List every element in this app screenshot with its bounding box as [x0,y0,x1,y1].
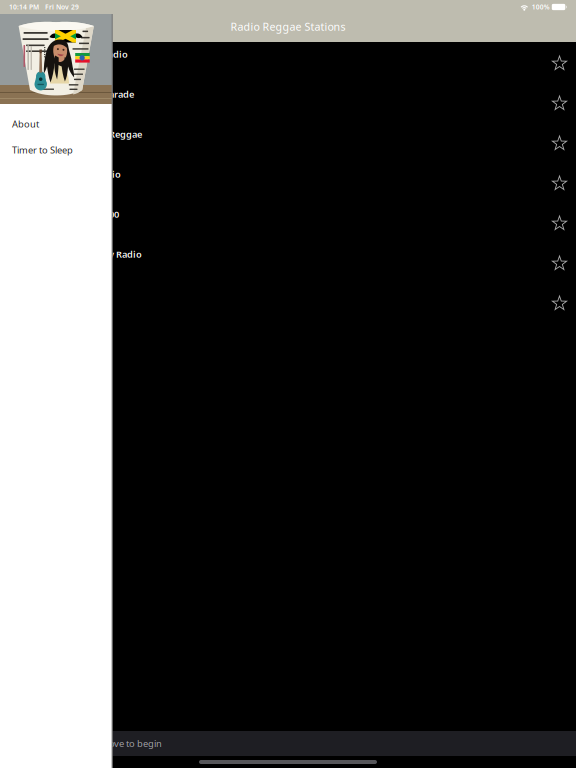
button[interactable]: Real Roots Radio [0,42,576,82]
button[interactable]: Kingston City Radio [0,242,576,282]
button[interactable]: Add Roots Radio Reggae to favourites [545,130,574,157]
button[interactable]: Add Hot 102 FM 100 to favourites [545,210,574,237]
button[interactable]: Add Kingston City Radio to favourites [545,250,574,277]
staticText: 100% [532,3,550,11]
button[interactable]: Add Real Roots Radio to favourites [545,50,574,77]
staticText: One Love Radio [52,168,121,180]
staticText: Kingston City Radio [52,248,142,260]
staticText: Reggae Hit Parade [52,88,134,100]
staticText: 10:14 PM [9,3,39,11]
button[interactable]: Irie FM [0,282,576,322]
staticText: Hot 102 FM 100 [52,208,119,220]
button[interactable]: Roots Radio Reggae [0,122,576,162]
button[interactable]: Reggae Hit Parade [0,82,576,122]
staticText: Real Roots Radio [52,48,128,60]
staticText: Radio Reggae Stations [230,19,345,34]
staticText: Timer to Sleep [12,144,73,156]
button[interactable]: Hot 102 FM 100 [0,202,576,242]
button[interactable]: Add Reggae Hit Parade to favourites [545,90,574,117]
staticText: About [12,118,39,130]
button[interactable]: Timer to Sleep [0,137,112,163]
staticText: Select a station above to begin [34,737,162,750]
button[interactable]: About [0,111,112,137]
button[interactable]: One Love Radio [0,162,576,202]
staticText: Fri Nov 29 [45,3,79,11]
button[interactable]: Add Irie FM to favourites [545,290,574,317]
staticText: Roots Radio Reggae [52,128,142,140]
button[interactable]: Add One Love Radio to favourites [545,170,574,197]
